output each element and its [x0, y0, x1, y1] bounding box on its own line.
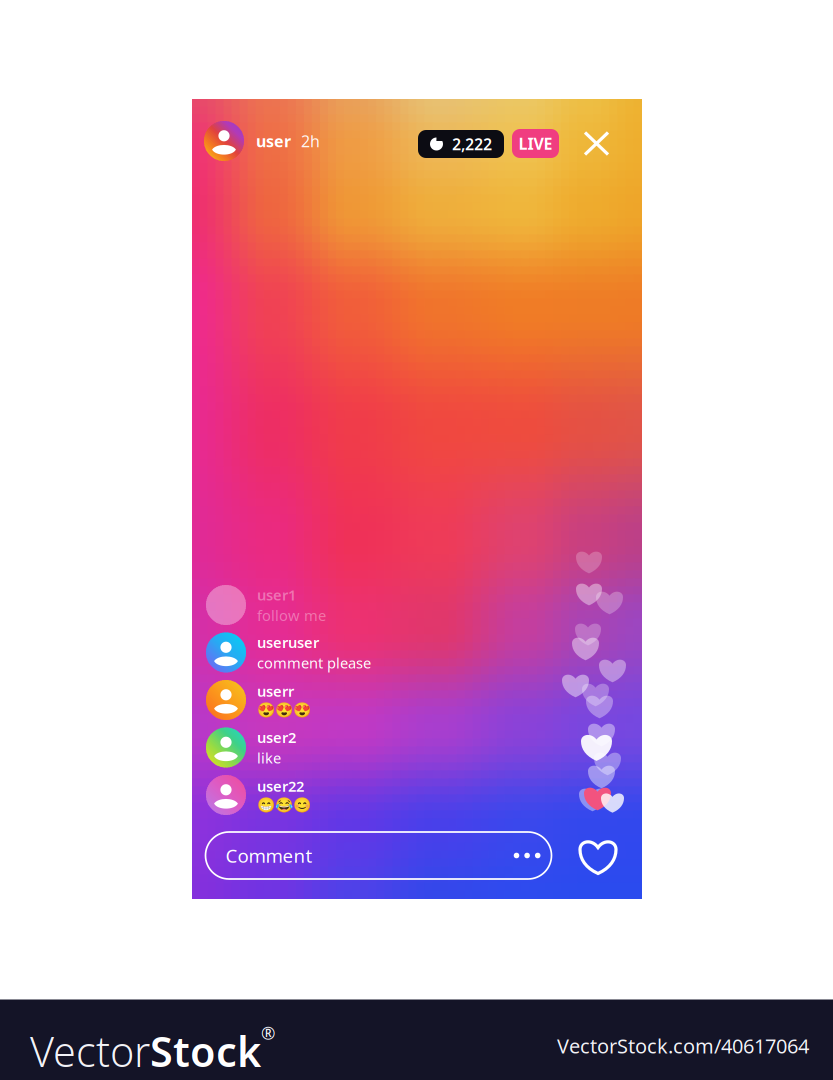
staticText: ® — [261, 1021, 275, 1044]
staticText: useruser — [257, 632, 319, 652]
staticText: Comment — [225, 843, 312, 868]
button[interactable]: Close — [578, 125, 615, 162]
button[interactable]: Like — [575, 833, 621, 880]
staticText: 2h — [301, 130, 320, 152]
staticText: user1 — [257, 585, 296, 604]
button[interactable]: user2 — [206, 727, 628, 767]
staticText: comment please — [257, 653, 371, 672]
staticText: user — [256, 130, 291, 152]
button[interactable]: 2,222 — [418, 130, 504, 158]
staticText: userr — [257, 681, 294, 701]
staticText: 😍😍😍 — [257, 702, 311, 719]
button[interactable]: user22 — [206, 775, 628, 815]
button[interactable]: useruser — [206, 632, 628, 672]
staticText: LIVE — [518, 133, 552, 154]
staticText: Stock — [150, 1023, 261, 1078]
staticText: user22 — [257, 776, 304, 796]
staticText: VectorStock.com/40617064 — [557, 1032, 809, 1059]
staticText: like — [257, 748, 281, 767]
button[interactable]: user1 — [206, 585, 628, 625]
staticText: Vector — [30, 1023, 150, 1078]
staticText: 😁😂😊 — [257, 797, 311, 814]
staticText: 2,222 — [452, 133, 492, 155]
button[interactable]: Comment — [205, 832, 551, 879]
button[interactable]: user — [204, 121, 320, 161]
button[interactable]: LIVE — [512, 129, 559, 158]
staticText: follow me — [257, 605, 326, 625]
staticText: user2 — [257, 727, 296, 747]
button[interactable]: userr — [206, 680, 628, 720]
